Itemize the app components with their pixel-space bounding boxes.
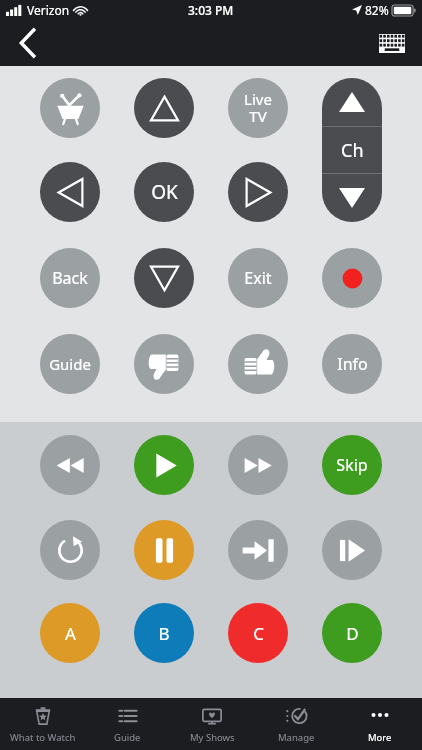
- button[interactable]: Exit: [228, 248, 288, 308]
- staticText: Exit: [244, 267, 272, 289]
- staticText: 3:03 PM: [188, 2, 234, 18]
- button[interactable]: Info: [322, 334, 382, 394]
- button[interactable]: Guide: [85, 698, 170, 750]
- button[interactable]: Keyboard: [372, 23, 412, 63]
- staticText: B: [158, 622, 170, 645]
- button[interactable]: Play: [134, 435, 194, 495]
- button[interactable]: What to Watch: [0, 698, 85, 750]
- staticText: C: [253, 622, 264, 645]
- button[interactable]: Fast forward: [228, 435, 288, 495]
- button[interactable]: Up: [134, 78, 194, 138]
- button[interactable]: Live TV: [228, 78, 288, 138]
- button[interactable]: Record: [322, 248, 382, 308]
- staticText: Skip: [336, 454, 368, 476]
- button[interactable]: Guide: [40, 334, 100, 394]
- button[interactable]: TiVo: [40, 78, 100, 138]
- button[interactable]: B: [134, 603, 194, 663]
- button[interactable]: [322, 700, 382, 750]
- staticText: 82%: [365, 2, 389, 18]
- button[interactable]: Rewind: [40, 435, 100, 495]
- staticText: Back: [52, 267, 88, 289]
- staticText: What to Watch: [10, 731, 76, 744]
- staticText: Verizon: [27, 2, 70, 18]
- button[interactable]: Thumbs up: [228, 334, 288, 394]
- staticText: D: [346, 622, 359, 645]
- button[interactable]: Manage: [254, 698, 338, 750]
- staticText: Info: [337, 353, 368, 375]
- button[interactable]: OK: [134, 162, 194, 222]
- staticText: A: [65, 622, 76, 645]
- button[interactable]: Skip to end: [228, 520, 288, 580]
- button[interactable]: Left: [40, 162, 100, 222]
- button[interactable]: Pause: [134, 520, 194, 580]
- button[interactable]: Down: [134, 248, 194, 308]
- button[interactable]: Thumbs down: [134, 334, 194, 394]
- button[interactable]: Back: [40, 248, 100, 308]
- button[interactable]: Replay: [40, 520, 100, 580]
- button[interactable]: Slow advance: [322, 520, 382, 580]
- button[interactable]: Ch: [322, 127, 382, 173]
- button[interactable]: [228, 700, 288, 750]
- button[interactable]: More: [338, 698, 422, 750]
- button[interactable]: C: [228, 603, 288, 663]
- button[interactable]: Channel up: [322, 78, 382, 126]
- button[interactable]: D: [322, 603, 382, 663]
- staticText: Guide: [114, 731, 141, 744]
- staticText: Live TV: [244, 89, 272, 127]
- staticText: Manage: [278, 731, 315, 744]
- button[interactable]: Back: [8, 23, 48, 63]
- staticText: Guide: [49, 354, 91, 374]
- staticText: My Shows: [190, 731, 235, 744]
- staticText: OK: [151, 179, 178, 205]
- button[interactable]: A: [40, 603, 100, 663]
- staticText: More: [368, 731, 392, 744]
- staticText: Ch: [341, 138, 364, 163]
- button[interactable]: Right: [228, 162, 288, 222]
- button[interactable]: Skip: [322, 435, 382, 495]
- button[interactable]: Channel down: [322, 174, 382, 222]
- button[interactable]: [134, 700, 194, 750]
- button[interactable]: My Shows: [170, 698, 254, 750]
